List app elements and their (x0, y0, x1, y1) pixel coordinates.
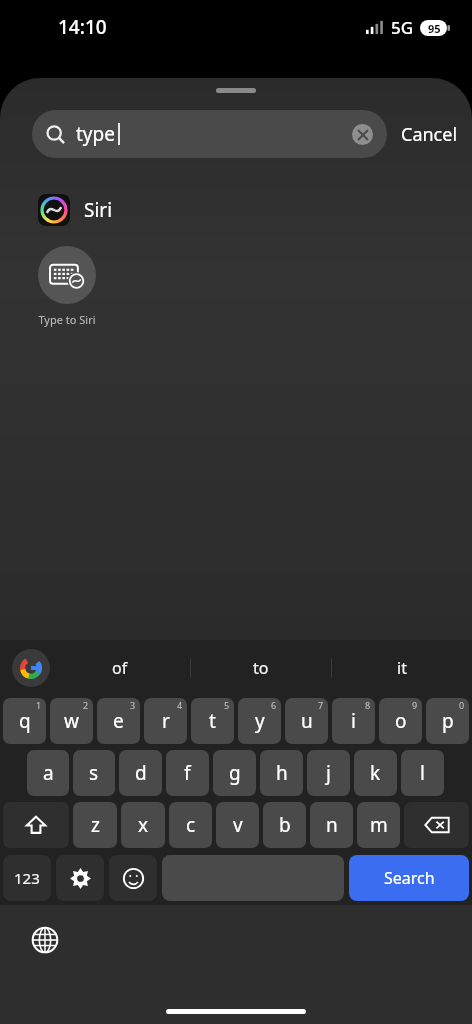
staticText: n (326, 812, 338, 838)
staticText: 1 (36, 699, 42, 711)
staticText: c (186, 812, 196, 838)
button[interactable]: b (263, 802, 306, 848)
button[interactable]: Type to Siri (32, 246, 102, 327)
staticText: 0 (459, 699, 465, 711)
staticText: m (370, 812, 388, 838)
button[interactable]: c (169, 802, 212, 848)
staticText: z (91, 812, 100, 838)
staticText: h (276, 760, 288, 786)
button[interactable]: Clear text (352, 124, 373, 145)
staticText: Cancel (401, 122, 458, 147)
button[interactable]: g (213, 750, 256, 796)
button[interactable]: o (379, 698, 422, 744)
staticText: j (326, 760, 331, 786)
staticText: f (184, 760, 191, 786)
staticText: 4 (177, 699, 183, 711)
staticText: 14:10 (58, 14, 107, 40)
staticText: Type to Siri (38, 312, 96, 327)
button[interactable]: m (357, 802, 400, 848)
staticText: Search (384, 867, 435, 889)
button[interactable]: Siri (0, 190, 472, 230)
button[interactable]: k (354, 750, 397, 796)
button[interactable]: Shift (3, 802, 69, 848)
staticText: i (351, 708, 356, 734)
button[interactable]: n (310, 802, 353, 848)
staticText: 95 (428, 21, 441, 36)
staticText: w (64, 708, 79, 734)
staticText: a (43, 760, 54, 786)
staticText: u (301, 708, 313, 734)
staticText: to (253, 657, 269, 679)
button[interactable]: y (238, 698, 281, 744)
staticText: t (209, 708, 216, 734)
staticText: v (233, 812, 243, 838)
staticText: d (135, 760, 147, 786)
button[interactable]: it (331, 640, 472, 695)
staticText: 8 (365, 699, 371, 711)
staticText: Siri (84, 197, 113, 223)
staticText: b (279, 812, 291, 838)
button[interactable]: Change language (28, 923, 62, 957)
button[interactable]: to (190, 640, 331, 695)
staticText: it (397, 657, 407, 679)
button[interactable]: w (50, 698, 93, 744)
staticText: 2 (83, 699, 89, 711)
staticText: 3 (130, 699, 136, 711)
staticText: k (370, 760, 381, 786)
button[interactable]: p (426, 698, 469, 744)
button[interactable]: 123 (3, 855, 51, 901)
staticText: y (255, 708, 265, 734)
button[interactable]: Search (349, 855, 469, 901)
button[interactable]: Space (162, 855, 344, 901)
staticText: of (112, 657, 128, 679)
staticText: 5G (391, 16, 414, 39)
button[interactable]: x (121, 802, 165, 848)
button[interactable]: r (144, 698, 187, 744)
button[interactable]: h (260, 750, 303, 796)
button[interactable]: u (285, 698, 328, 744)
staticText: p (442, 708, 454, 734)
button[interactable]: v (216, 802, 259, 848)
staticText: 9 (412, 699, 418, 711)
button[interactable]: Cancel (387, 122, 472, 147)
button[interactable]: l (401, 750, 444, 796)
staticText: 6 (271, 699, 277, 711)
staticText: 123 (14, 868, 40, 888)
staticText: s (89, 760, 99, 786)
staticText: g (229, 760, 241, 786)
staticText: 5 (224, 699, 230, 711)
button[interactable]: f (166, 750, 209, 796)
button[interactable]: of (50, 640, 190, 695)
button[interactable]: j (307, 750, 350, 796)
button[interactable]: Backspace (404, 802, 469, 848)
staticText: e (113, 708, 124, 734)
button[interactable]: t (191, 698, 234, 744)
button[interactable]: q (3, 698, 46, 744)
button[interactable]: d (119, 750, 162, 796)
button[interactable]: Google (12, 649, 50, 687)
button[interactable]: z (73, 802, 117, 848)
staticText: type (76, 121, 115, 147)
staticText: r (162, 708, 170, 734)
staticText: l (420, 760, 425, 786)
staticText: o (395, 708, 407, 734)
staticText: x (138, 812, 149, 838)
staticText: q (19, 708, 31, 734)
button[interactable]: Emoji (109, 855, 157, 901)
button[interactable]: i (332, 698, 375, 744)
button[interactable]: s (73, 750, 115, 796)
button[interactable]: Settings (56, 855, 104, 901)
button[interactable]: a (27, 750, 69, 796)
button[interactable]: e (97, 698, 140, 744)
staticText: 7 (318, 699, 324, 711)
button[interactable]: type (32, 110, 387, 158)
